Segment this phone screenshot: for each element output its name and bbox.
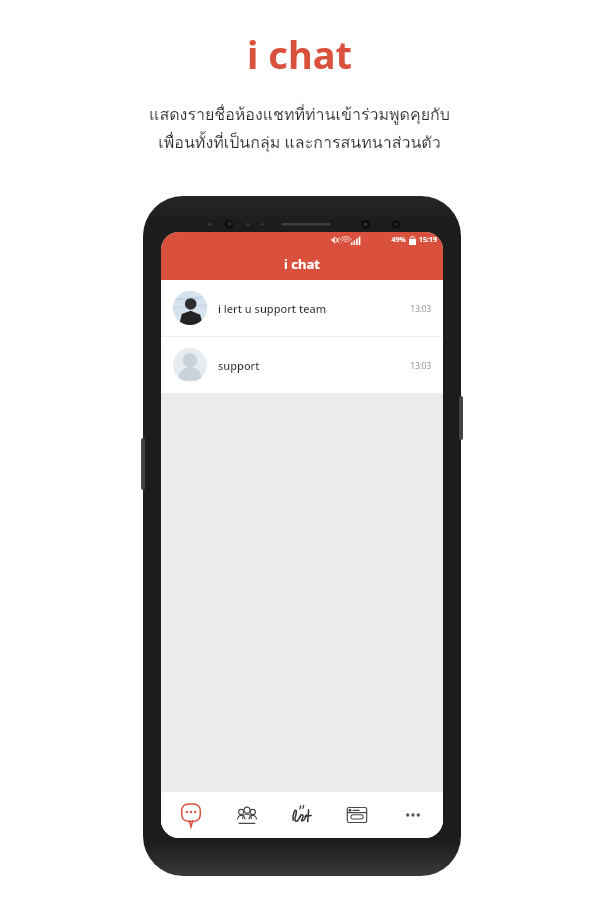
- button[interactable]: Browser: [332, 792, 382, 838]
- staticText: i chat: [247, 28, 352, 80]
- staticText: 15:19: [419, 235, 437, 245]
- button[interactable]: Groups: [222, 792, 272, 838]
- button[interactable]: More: [388, 792, 438, 838]
- staticText: i lert u support team: [218, 301, 410, 316]
- staticText: แสดงรายชื่อห้องแชทที่ท่านเข้าร่วมพูดคุยก…: [149, 102, 450, 127]
- staticText: i chat: [284, 255, 320, 273]
- button[interactable]: Chats: [166, 792, 216, 838]
- staticText: 13:03: [410, 303, 431, 314]
- staticText: 13:03: [410, 360, 431, 371]
- button[interactable]: i lert u support team: [161, 280, 443, 336]
- button[interactable]: support: [161, 337, 443, 393]
- button[interactable]: Notes: [277, 792, 327, 838]
- staticText: support: [218, 358, 410, 373]
- staticText: 49%: [391, 235, 406, 245]
- staticText: เพื่อนทั้งที่เป็นกลุ่ม และการสนทนาส่วนตั…: [158, 130, 441, 155]
